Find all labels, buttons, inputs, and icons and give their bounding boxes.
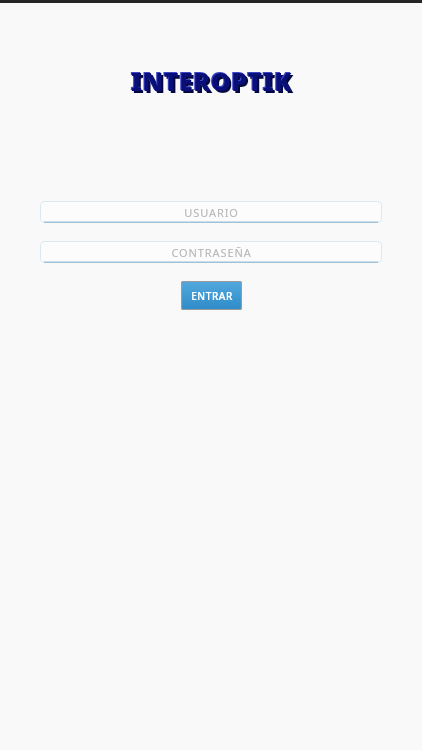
button[interactable]: ENTRAR (181, 281, 242, 310)
staticText: INTEROPTIK (131, 64, 292, 94)
button[interactable]: CONTRASEÑA (40, 241, 382, 263)
staticText: USUARIO (184, 205, 239, 220)
staticText: CONTRASEÑA (171, 245, 252, 260)
button[interactable]: USUARIO (40, 201, 382, 223)
staticText: INTEROPTIK (133, 66, 294, 96)
staticText: ENTRAR (191, 289, 233, 303)
staticText: INTEROPTIK (130, 63, 291, 93)
